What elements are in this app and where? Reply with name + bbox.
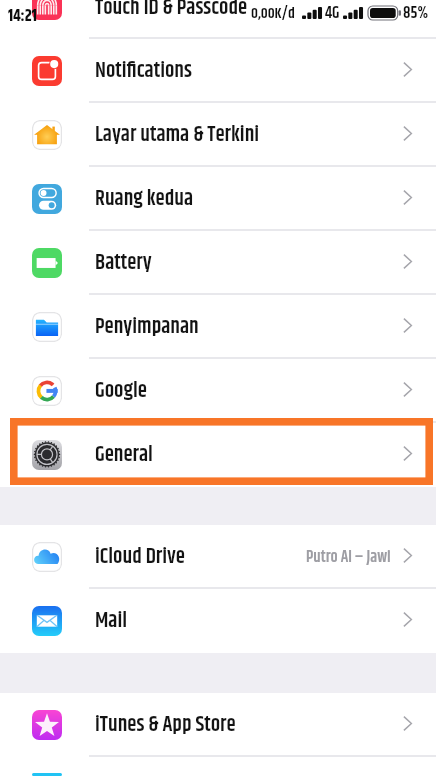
button[interactable]: Notifications [0,39,436,103]
staticText: Putro Al – Jawi [306,545,391,569]
button[interactable]: Layar utama & Terkini [0,103,436,167]
staticText: 14:21 [8,4,37,28]
staticText: Ruang kedua [95,183,194,215]
staticText: 0,00K/d [251,2,295,25]
staticText: Battery [95,247,152,279]
staticText: iCloud Drive [95,541,185,573]
button[interactable]: Battery [0,231,436,295]
button[interactable]: iTunes & App Store [0,693,436,757]
staticText: Mail [95,605,128,637]
staticText: Notifications [95,55,192,87]
button[interactable]: Penyimpanan [0,295,436,359]
button[interactable]: Wallet [0,757,436,776]
staticText: Penyimpanan [95,311,199,343]
button[interactable]: iCloud Drive [0,525,436,589]
staticText: 85% [403,1,429,25]
button[interactable]: Ruang kedua [0,167,436,231]
staticText: General [95,439,153,471]
staticText: Touch ID & Passcode [95,0,248,24]
button[interactable]: General [0,423,436,487]
staticText: 4G [325,1,340,25]
button[interactable]: Mail [0,589,436,653]
staticText: iTunes & App Store [95,709,236,741]
staticText: Google [95,375,147,407]
button[interactable]: Touch ID & Passcode [0,0,436,39]
staticText: Layar utama & Terkini [95,119,260,151]
button[interactable]: Google [0,359,436,423]
